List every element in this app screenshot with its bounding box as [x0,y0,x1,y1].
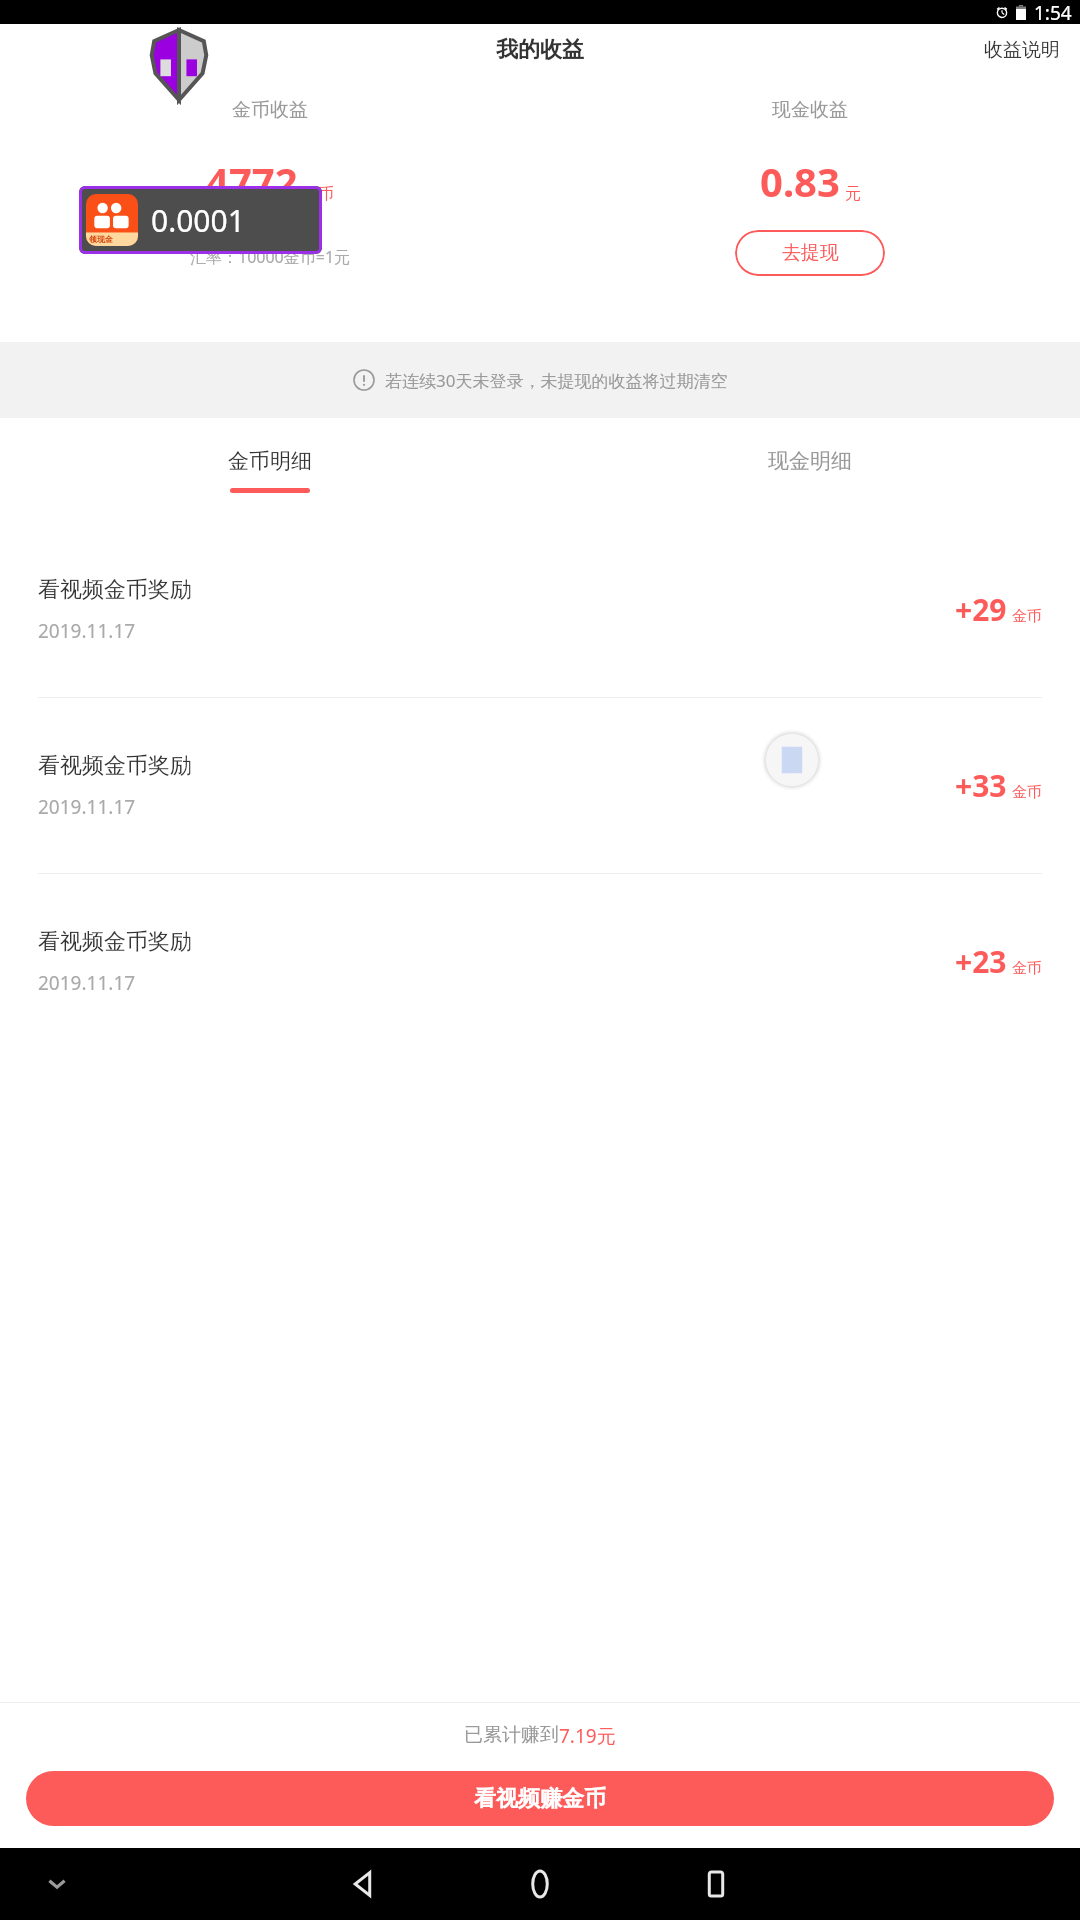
button[interactable]: Overlay value [79,186,322,254]
button[interactable]: 看视频金币奖励 [0,874,1080,1049]
staticText: 4772 [206,154,298,208]
button[interactable]: 收益说明 [964,28,1080,72]
staticText: 看视频金币奖励 [38,576,192,604]
staticText: 若连续30天未登录，未提现的收益将过期清空 [385,369,728,392]
staticText: 金币收益 [232,98,308,122]
staticText: 收益说明 [984,38,1060,62]
staticText: 1:54 [1034,0,1072,24]
staticText: 看视频赚金币 [474,1785,606,1813]
staticText: 现金收益 [772,98,848,122]
button[interactable]: Recents [678,1848,754,1920]
staticText: 0.0001 [151,200,245,241]
staticText: 金币明细 [228,448,312,474]
button[interactable]: Home [502,1848,578,1920]
staticText: 汇率：10000金币=1元 [190,246,351,268]
staticText: 2019.11.17 [38,970,136,996]
staticText: 0.83 [760,154,840,208]
button[interactable]: 看视频金币奖励 [0,698,1080,873]
staticText: 金币 [1012,959,1042,978]
staticText: 7.19元 [559,1723,616,1749]
staticText: 2019.11.17 [38,794,136,820]
staticText: 去提现 [782,241,839,265]
button[interactable]: 看视频赚金币 [26,1771,1054,1826]
button[interactable]: Hide [40,1867,74,1901]
button[interactable]: 金币明细 [0,418,540,522]
staticText: 看视频金币奖励 [38,928,192,956]
staticText: +23 [955,941,1007,982]
button[interactable]: 去提现 [735,230,885,276]
staticText: 领现金 [89,234,113,244]
button[interactable]: Back [326,1848,402,1920]
staticText: +29 [955,589,1007,630]
staticText: +33 [955,765,1007,806]
staticText: 2019.11.17 [38,618,136,644]
staticText: 已累计赚到 [464,1723,559,1747]
button[interactable]: 看视频金币奖励 [0,522,1080,697]
staticText: 元 [845,184,861,204]
staticText: 金币 [1012,783,1042,802]
staticText: 金币 [302,184,334,204]
staticText: 看视频金币奖励 [38,752,192,780]
staticText: 现金明细 [768,448,852,474]
button[interactable]: 现金明细 [540,418,1080,522]
staticText: 我的收益 [496,36,584,64]
staticText: 金币 [1012,607,1042,626]
